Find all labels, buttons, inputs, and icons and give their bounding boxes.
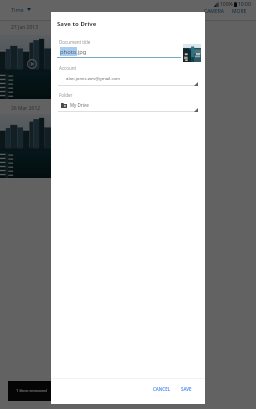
staticText: Folder — [59, 92, 73, 98]
button[interactable]: CAMERA — [204, 8, 224, 15]
staticText: Document title — [59, 39, 91, 45]
staticText: SAVE — [181, 386, 192, 392]
staticText: CAMERA — [204, 8, 224, 15]
button[interactable]: MORE — [232, 8, 247, 15]
staticText: 27 Jan 2013 — [11, 24, 39, 31]
staticText: Account — [59, 65, 77, 71]
staticText: alan.jones.wm@gmail.com — [66, 75, 121, 81]
button[interactable]: CANCEL — [149, 382, 175, 396]
staticText: 100% — [220, 1, 233, 8]
button[interactable]: SAVE — [177, 382, 196, 396]
staticText: MORE — [232, 8, 247, 15]
staticText: My Drive — [70, 102, 89, 108]
staticText: 1 item removed — [16, 388, 47, 394]
staticText: 10:00 — [238, 1, 251, 8]
staticText: 26 Mar 2012 — [11, 105, 41, 112]
staticText: photo.jpg — [60, 48, 87, 56]
staticText: Save to Drive — [57, 20, 97, 28]
staticText: Time — [11, 6, 24, 13]
button[interactable]: Time — [11, 6, 31, 13]
other: Play video — [27, 59, 37, 69]
staticText: CANCEL — [153, 386, 171, 392]
